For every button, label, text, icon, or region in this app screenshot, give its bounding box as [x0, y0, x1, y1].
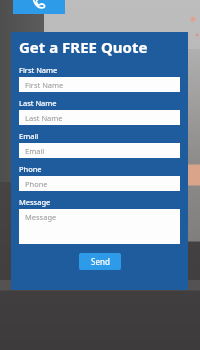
staticText: First Name: [19, 65, 58, 75]
button[interactable]: Phone: [19, 176, 180, 191]
staticText: First Name: [25, 80, 64, 90]
staticText: Message: [19, 197, 51, 207]
staticText: Send: [91, 256, 110, 267]
button[interactable]: Message: [19, 209, 180, 244]
button[interactable]: First Name: [19, 77, 180, 92]
staticText: Email: [19, 131, 39, 141]
staticText: Phone: [19, 164, 42, 174]
staticText: Email: [25, 146, 45, 156]
staticText: Phone: [25, 179, 48, 189]
button[interactable]: Email: [19, 143, 180, 158]
staticText: Last Name: [25, 113, 63, 123]
staticText: Message: [25, 212, 57, 222]
staticText: Last Name: [19, 98, 57, 108]
staticText: Get a FREE Quote: [19, 37, 148, 57]
button[interactable]: Call us: [13, 0, 65, 14]
button[interactable]: Send: [79, 253, 121, 270]
button[interactable]: Last Name: [19, 110, 180, 125]
